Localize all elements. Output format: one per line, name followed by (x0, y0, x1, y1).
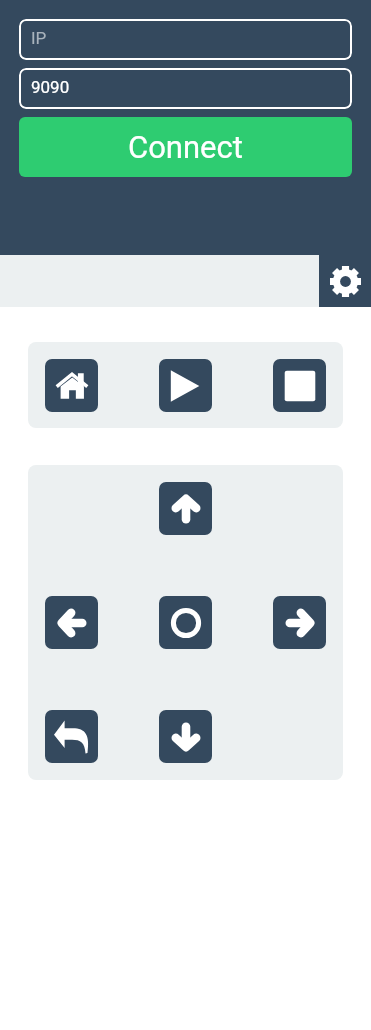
button[interactable]: Stop (273, 359, 326, 412)
staticText: Connect (128, 129, 243, 165)
button[interactable]: OK (159, 596, 212, 649)
button[interactable]: IP (19, 19, 352, 60)
staticText: 9090 (31, 77, 70, 97)
button[interactable]: Connect (19, 117, 352, 177)
button[interactable]: Play (159, 359, 212, 412)
button[interactable]: Right (273, 596, 326, 649)
button[interactable]: Up (159, 482, 212, 535)
button[interactable]: 9090 (19, 68, 352, 109)
button[interactable]: Settings (319, 255, 371, 307)
staticText: IP (31, 28, 47, 48)
button[interactable]: Left (45, 596, 98, 649)
button[interactable]: Back (45, 710, 98, 763)
button[interactable]: Home (45, 359, 98, 412)
button[interactable]: Down (159, 710, 212, 763)
